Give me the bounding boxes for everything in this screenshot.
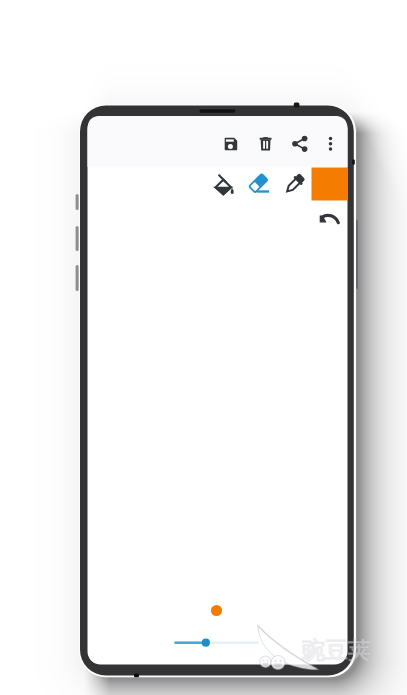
button[interactable]: Undo xyxy=(319,210,338,229)
button[interactable]: Fill xyxy=(214,174,236,196)
button[interactable]: More options xyxy=(322,135,340,153)
button[interactable]: Eraser xyxy=(249,174,271,196)
button[interactable]: Color picker xyxy=(284,174,306,196)
button[interactable]: Current color xyxy=(311,167,348,200)
button[interactable]: Delete xyxy=(257,135,275,153)
button[interactable]: Brush size xyxy=(172,634,264,652)
button[interactable]: Share xyxy=(291,135,309,153)
button[interactable]: Save xyxy=(223,135,241,153)
